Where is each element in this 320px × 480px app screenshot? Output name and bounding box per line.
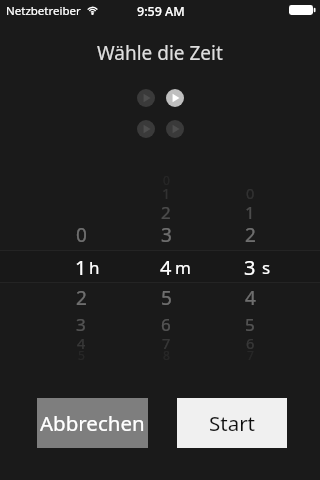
button[interactable]: Abbrechen: [37, 398, 148, 448]
other: Battery full: [289, 5, 316, 16]
staticText: 2: [161, 201, 171, 224]
staticText: s: [262, 256, 271, 279]
button[interactable]: 5 hours: [41, 341, 121, 369]
button[interactable]: 5 minutes: [126, 284, 206, 312]
button[interactable]: 1 seconds: [210, 198, 290, 226]
button[interactable]: 6 minutes: [126, 310, 206, 338]
staticText: 2: [245, 222, 256, 248]
staticText: 1: [245, 201, 255, 224]
staticText: 4: [77, 333, 86, 353]
staticText: 5: [161, 285, 172, 311]
button[interactable]: 1 hours: [41, 253, 121, 281]
button[interactable]: 4 minutes: [126, 253, 206, 281]
button[interactable]: 6 seconds: [210, 329, 290, 357]
button[interactable]: 7 seconds: [210, 341, 290, 369]
button[interactable]: 0 hours: [41, 221, 121, 249]
staticText: 3: [76, 313, 86, 336]
staticText: Netzbetreiber: [6, 3, 81, 19]
button[interactable]: 3 minutes: [126, 221, 206, 249]
button[interactable]: 4 hours: [41, 329, 121, 357]
button[interactable]: Speed normal: [137, 120, 155, 138]
staticText: Start: [209, 409, 256, 437]
button[interactable]: Speed one half: [166, 89, 184, 107]
button[interactable]: Speed one quarter: [137, 89, 155, 107]
staticText: m: [175, 256, 191, 279]
staticText: 3: [161, 222, 172, 248]
staticText: 0: [246, 183, 255, 203]
staticText: 4: [245, 285, 256, 311]
button[interactable]: 3 seconds: [210, 253, 290, 281]
button[interactable]: 5 seconds: [210, 310, 290, 338]
staticText: 7: [247, 347, 254, 363]
other: Wi-Fi signal: [86, 4, 99, 15]
staticText: 5: [245, 313, 255, 336]
staticText: 0: [76, 222, 87, 248]
button[interactable]: 7 minutes: [126, 329, 206, 357]
staticText: 9:59 AM: [137, 3, 185, 20]
staticText: 1: [162, 183, 171, 203]
button[interactable]: Start: [177, 398, 287, 448]
staticText: h: [89, 256, 100, 279]
staticText: 0: [163, 172, 170, 188]
staticText: 1: [75, 254, 87, 281]
staticText: 2: [76, 285, 87, 311]
button[interactable]: 2 seconds: [210, 221, 290, 249]
staticText: Abbrechen: [40, 409, 145, 437]
staticText: 6: [161, 313, 171, 336]
staticText: 6: [246, 333, 255, 353]
button[interactable]: 4 seconds: [210, 284, 290, 312]
staticText: 3: [244, 254, 256, 281]
button[interactable]: 2 minutes: [126, 198, 206, 226]
staticText: 8: [163, 347, 170, 363]
button[interactable]: 3 hours: [41, 310, 121, 338]
button[interactable]: 2 hours: [41, 284, 121, 312]
staticText: 5: [78, 347, 85, 363]
staticText: Wähle die Zeit: [97, 40, 223, 66]
staticText: 4: [160, 254, 172, 281]
button[interactable]: Speed double: [166, 120, 184, 138]
staticText: 7: [162, 333, 171, 353]
